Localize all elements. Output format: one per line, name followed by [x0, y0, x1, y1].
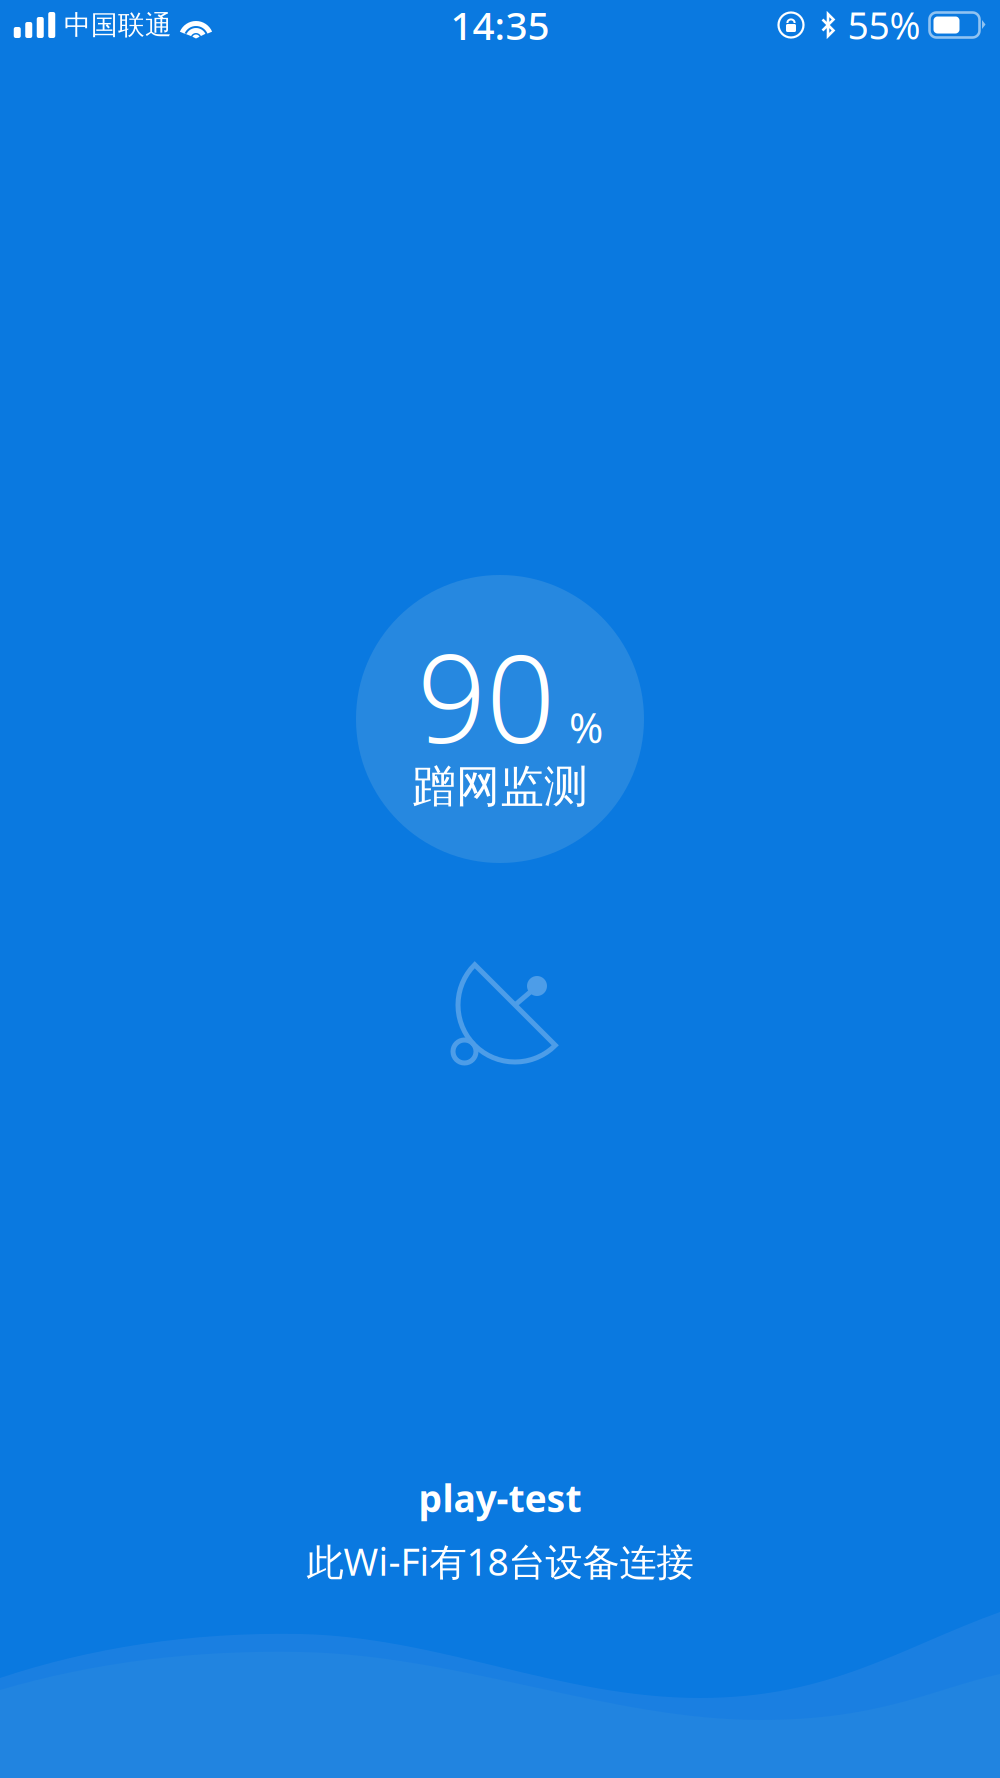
staticText: play-test [418, 1473, 581, 1523]
staticText: 14:35 [450, 0, 549, 51]
staticText: % [569, 700, 603, 755]
staticText: 90 [417, 615, 555, 776]
staticText: 蹭网监测 [412, 759, 588, 813]
staticText: 中国联通 [64, 9, 172, 41]
staticText: 此Wi-Fi有18台设备连接 [306, 1537, 693, 1586]
staticText: 55% [847, 0, 920, 50]
